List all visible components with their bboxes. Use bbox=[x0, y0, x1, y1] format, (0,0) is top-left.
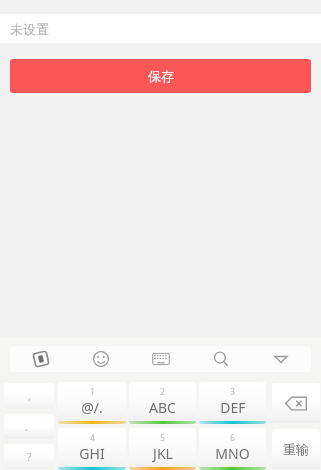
staticText: 。 bbox=[24, 420, 34, 433]
staticText: ? bbox=[27, 450, 32, 464]
staticText: GHI bbox=[79, 444, 105, 463]
staticText: @/. bbox=[81, 398, 103, 417]
staticText: , bbox=[28, 389, 31, 403]
button[interactable]: 未设置 bbox=[0, 14, 321, 43]
staticText: 重输 bbox=[283, 441, 309, 457]
button[interactable]: 。 bbox=[4, 414, 54, 439]
staticText: 1 bbox=[90, 386, 95, 397]
staticText: 4 bbox=[90, 432, 95, 443]
button[interactable]: ? bbox=[4, 444, 54, 469]
staticText: JKL bbox=[153, 444, 173, 463]
button[interactable]: Sogou input method bbox=[10, 346, 71, 372]
button[interactable]: Hide keyboard bbox=[251, 346, 311, 372]
button[interactable]: Keyboard layout bbox=[131, 346, 191, 372]
staticText: 5 bbox=[160, 432, 165, 443]
button[interactable]: Search bbox=[191, 346, 251, 372]
button[interactable]: 6 bbox=[199, 428, 266, 470]
staticText: 保存 bbox=[148, 68, 174, 84]
staticText: 3 bbox=[230, 386, 235, 397]
button[interactable]: 2 bbox=[129, 382, 196, 424]
button[interactable]: 4 bbox=[58, 428, 126, 470]
staticText: 2 bbox=[160, 386, 165, 397]
staticText: 6 bbox=[230, 432, 235, 443]
button[interactable]: Delete bbox=[272, 383, 320, 423]
staticText: DEF bbox=[220, 398, 246, 417]
staticText: 未设置 bbox=[10, 21, 49, 37]
button[interactable]: 3 bbox=[199, 382, 266, 424]
button[interactable]: , bbox=[4, 383, 54, 409]
button[interactable]: 保存 bbox=[10, 59, 311, 93]
button[interactable]: 重输 bbox=[272, 429, 320, 469]
button[interactable]: 5 bbox=[129, 428, 196, 470]
button[interactable]: Emoji bbox=[71, 346, 131, 372]
staticText: MNO bbox=[215, 444, 250, 463]
staticText: ABC bbox=[149, 398, 176, 417]
button[interactable]: 1 bbox=[58, 382, 126, 424]
